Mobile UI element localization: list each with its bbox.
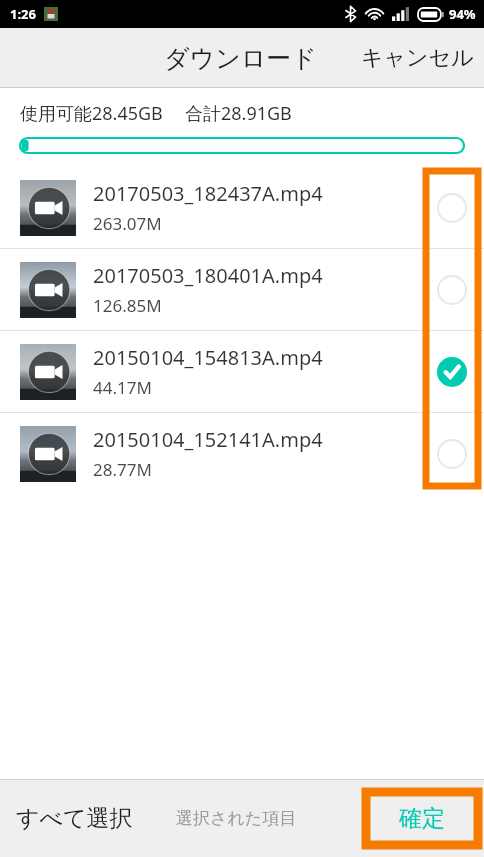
button[interactable]: Selected	[420, 331, 484, 412]
button[interactable]: Not selected	[420, 413, 484, 494]
button[interactable]: 20170503_182437A.mp4	[0, 167, 484, 248]
staticText: 20150104_152141A.mp4	[93, 426, 323, 453]
staticText: 合計28.91GB	[185, 101, 292, 126]
staticText: キャンセル	[361, 44, 474, 72]
button[interactable]: すべて選択	[8, 794, 141, 843]
button[interactable]: 確定	[366, 792, 478, 845]
button[interactable]: Not selected	[420, 249, 484, 330]
staticText: すべて選択	[16, 804, 133, 833]
button[interactable]: 20150104_154813A.mp4	[0, 331, 484, 412]
staticText: 1:26	[10, 5, 36, 23]
staticText: 28.77M	[93, 458, 152, 481]
staticText: ダウンロード	[164, 43, 317, 74]
staticText: 確定	[399, 804, 445, 833]
button[interactable]: 20170503_180401A.mp4	[0, 249, 484, 330]
button[interactable]: キャンセル	[351, 34, 484, 82]
staticText: 20170503_182437A.mp4	[93, 180, 323, 207]
staticText: 263.07M	[93, 212, 162, 235]
staticText: 94%	[449, 5, 476, 23]
staticText: 20170503_180401A.mp4	[93, 262, 323, 289]
staticText: 20150104_154813A.mp4	[93, 344, 323, 371]
staticText: 使用可能28.45GB	[20, 101, 163, 126]
staticText: 126.85M	[93, 294, 162, 317]
button[interactable]: 20150104_152141A.mp4	[0, 413, 484, 494]
button[interactable]: Not selected	[420, 167, 484, 248]
staticText: 44.17M	[93, 376, 152, 399]
button[interactable]: ダウンロード	[158, 37, 323, 80]
staticText: 選択された項目	[176, 808, 297, 829]
